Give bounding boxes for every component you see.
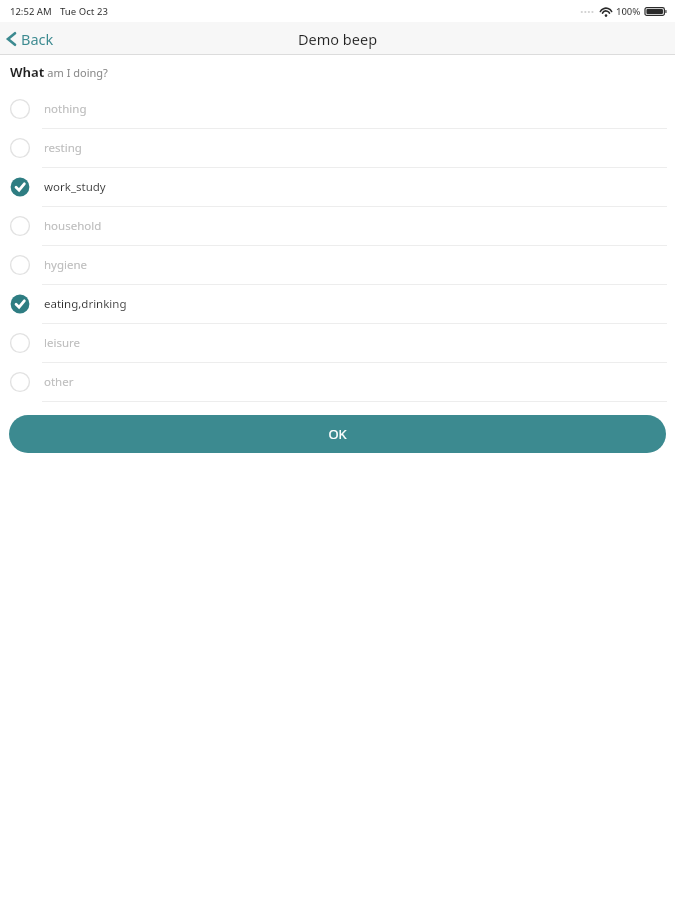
staticText: 12:52 AM — [10, 5, 52, 18]
button[interactable]: leisure — [0, 324, 675, 363]
button[interactable]: other — [0, 363, 675, 402]
staticText: household — [44, 218, 102, 234]
button[interactable]: hygiene — [0, 246, 675, 285]
staticText: Tue Oct 23 — [60, 5, 108, 18]
button[interactable]: eating,drinking — [0, 285, 675, 324]
button[interactable]: household — [0, 207, 675, 246]
staticText: nothing — [44, 101, 87, 117]
staticText: leisure — [44, 335, 81, 351]
staticText: 100% — [616, 5, 641, 18]
staticText: eating,drinking — [44, 296, 127, 312]
button[interactable]: resting — [0, 129, 675, 168]
staticText: other — [44, 374, 74, 390]
staticText: OK — [328, 425, 347, 443]
button[interactable]: nothing — [0, 90, 675, 129]
staticText: What am I doing? — [10, 63, 108, 81]
staticText: resting — [44, 140, 82, 156]
staticText: work_study — [44, 179, 106, 195]
staticText: hygiene — [44, 257, 88, 273]
button[interactable]: OK — [9, 415, 666, 453]
staticText: Demo beep — [298, 29, 378, 49]
button[interactable]: Back — [0, 25, 66, 53]
staticText: Back — [21, 29, 54, 49]
button[interactable]: work_study — [0, 168, 675, 207]
